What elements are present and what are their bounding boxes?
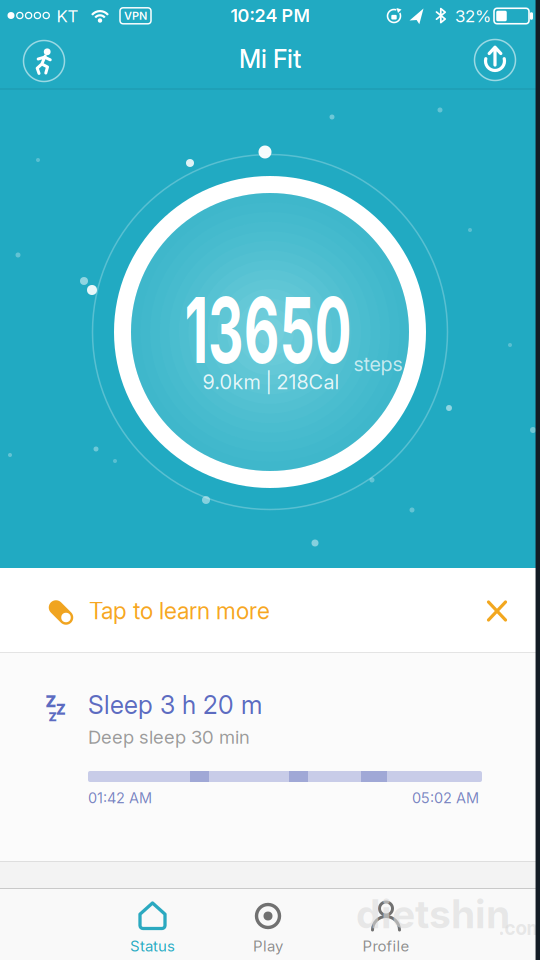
staticText: steps <box>353 352 402 376</box>
staticText: 32% <box>455 6 491 26</box>
staticText: Profile <box>362 937 409 955</box>
staticText: Sleep 3 h 20 m <box>88 690 262 720</box>
staticText: .com <box>498 916 540 939</box>
button[interactable]: Play <box>213 889 323 960</box>
staticText: 9.0km | 218Cal <box>202 370 339 394</box>
staticText: Mi Fit <box>239 44 301 74</box>
staticText: Deep sleep 30 min <box>88 726 250 748</box>
staticText: 05:02 AM <box>412 789 479 807</box>
staticText: Z <box>56 701 66 718</box>
button[interactable]: Tap to learn more <box>0 568 470 652</box>
staticText: VPN <box>124 9 147 22</box>
button[interactable]: Z <box>0 653 540 861</box>
staticText: 01:42 AM <box>88 789 152 807</box>
button[interactable]: Sync <box>473 38 517 82</box>
staticText: 10:24 PM <box>230 5 309 26</box>
staticText: Z <box>48 710 56 724</box>
staticText: Tap to learn more <box>89 597 270 625</box>
staticText: 13650 <box>130 275 406 385</box>
staticText: Z <box>45 692 56 711</box>
button[interactable]: Dismiss <box>467 569 527 653</box>
button[interactable]: Status <box>97 889 207 960</box>
staticText: Status <box>130 937 175 955</box>
staticText: KT <box>56 6 78 26</box>
staticText: Play <box>253 937 283 955</box>
button[interactable]: Profile <box>331 889 441 960</box>
staticText: dietshin <box>356 890 510 938</box>
button[interactable]: Activity <box>22 39 66 83</box>
